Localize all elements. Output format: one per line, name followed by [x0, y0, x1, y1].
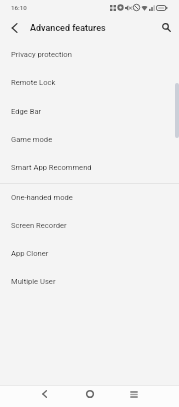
- button[interactable]: App Cloner: [0, 239, 179, 267]
- staticText: Smart App Recommend: [11, 163, 92, 172]
- button[interactable]: Recent apps: [123, 385, 145, 407]
- staticText: Privacy protection: [11, 50, 72, 59]
- staticText: Remote Lock: [11, 78, 56, 87]
- button[interactable]: Multiple User: [0, 267, 179, 295]
- staticText: Multiple User: [11, 277, 56, 286]
- button[interactable]: Privacy protection: [0, 40, 179, 68]
- staticText: Advanced features: [30, 23, 106, 34]
- button[interactable]: Back: [33, 385, 55, 407]
- staticText: Game mode: [11, 135, 53, 144]
- button[interactable]: Navigate up: [4, 18, 24, 38]
- staticText: App Cloner: [11, 249, 49, 258]
- button[interactable]: Home: [79, 385, 101, 407]
- button[interactable]: One-handed mode: [0, 183, 179, 211]
- button[interactable]: Remote Lock: [0, 68, 179, 96]
- button[interactable]: Screen Recorder: [0, 211, 179, 239]
- button[interactable]: Edge Bar: [0, 97, 179, 125]
- staticText: 16:10: [11, 4, 27, 11]
- staticText: Screen Recorder: [11, 221, 67, 230]
- button[interactable]: Search: [156, 17, 176, 37]
- staticText: Edge Bar: [11, 107, 42, 116]
- button[interactable]: Game mode: [0, 125, 179, 153]
- staticText: One-handed mode: [11, 193, 73, 202]
- button[interactable]: Smart App Recommend: [0, 153, 179, 181]
